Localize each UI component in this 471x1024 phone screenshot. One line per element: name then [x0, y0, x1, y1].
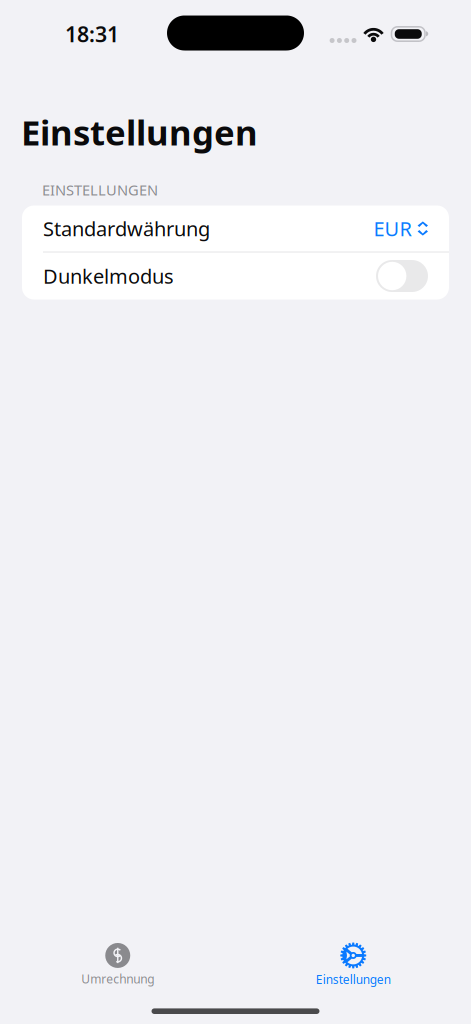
staticText: Dunkelmodus: [43, 263, 174, 289]
button[interactable]: Dunkelmodus: [22, 252, 449, 299]
button[interactable]: Standardwährung: [22, 205, 449, 251]
staticText: Standardwährung: [43, 215, 210, 242]
staticText: Einstellungen: [316, 971, 391, 987]
staticText: Umrechnung: [81, 971, 154, 987]
button[interactable]: Umrechnung: [0, 943, 235, 987]
staticText: 18:31: [65, 20, 119, 48]
staticText: Einstellungen: [21, 109, 258, 155]
button[interactable]: Einstellungen: [235, 942, 471, 987]
staticText: EINSTELLUNGEN: [42, 180, 158, 199]
staticText: EUR: [374, 215, 412, 242]
